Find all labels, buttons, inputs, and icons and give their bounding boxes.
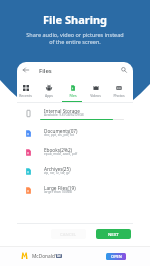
button[interactable]: Large Files(19) [17,181,133,200]
staticText: Ebooks(2%2) [44,147,72,153]
button[interactable]: Archives(25) [17,162,133,181]
staticText: larger than 100MB [44,190,72,194]
staticText: Share audio, video or pictures instead o… [0,31,150,45]
staticText: Internal Storage [44,108,80,114]
button[interactable]: Videos [84,83,107,101]
button[interactable]: Recents [17,83,37,101]
staticText: Files [69,93,77,98]
button[interactable]: Internal Storage [17,104,133,123]
staticText: Ad [57,254,61,258]
staticText: Documents(07) [44,128,78,134]
staticText: Large Files(19) [44,185,76,191]
button[interactable]: Back [20,64,32,76]
button[interactable]: CANCEL [51,229,86,239]
staticText: CANCEL [60,231,77,237]
staticText: Archives(25) [44,166,71,172]
button[interactable]: NEXT [96,229,131,239]
staticText: Videos [90,93,101,98]
staticText: Available: 9.87GB/62.09GB [44,113,84,117]
staticText: McDonald's [32,253,59,260]
button[interactable]: Ebooks(2%2) [17,143,133,162]
staticText: File Sharing [0,12,150,27]
button[interactable]: Photos [107,83,130,101]
staticText: zip, rar, 7z, tar, gz [44,171,70,175]
staticText: NEXT [108,231,119,237]
staticText: epub, mobi, azw3, pdf [44,152,78,156]
button[interactable]: Files [61,83,84,101]
staticText: Apps [45,93,53,98]
button[interactable]: Search [118,64,130,76]
button[interactable]: Documents(07) [17,124,133,143]
button[interactable]: Apps [37,83,60,101]
staticText: Files [39,67,52,75]
staticText: OPEN [111,254,122,259]
staticText: doc, ppt, xls, pdf, txt [44,133,75,137]
button[interactable]: OPEN [106,253,126,260]
staticText: Photos [113,93,125,98]
staticText: Recents [19,93,32,98]
